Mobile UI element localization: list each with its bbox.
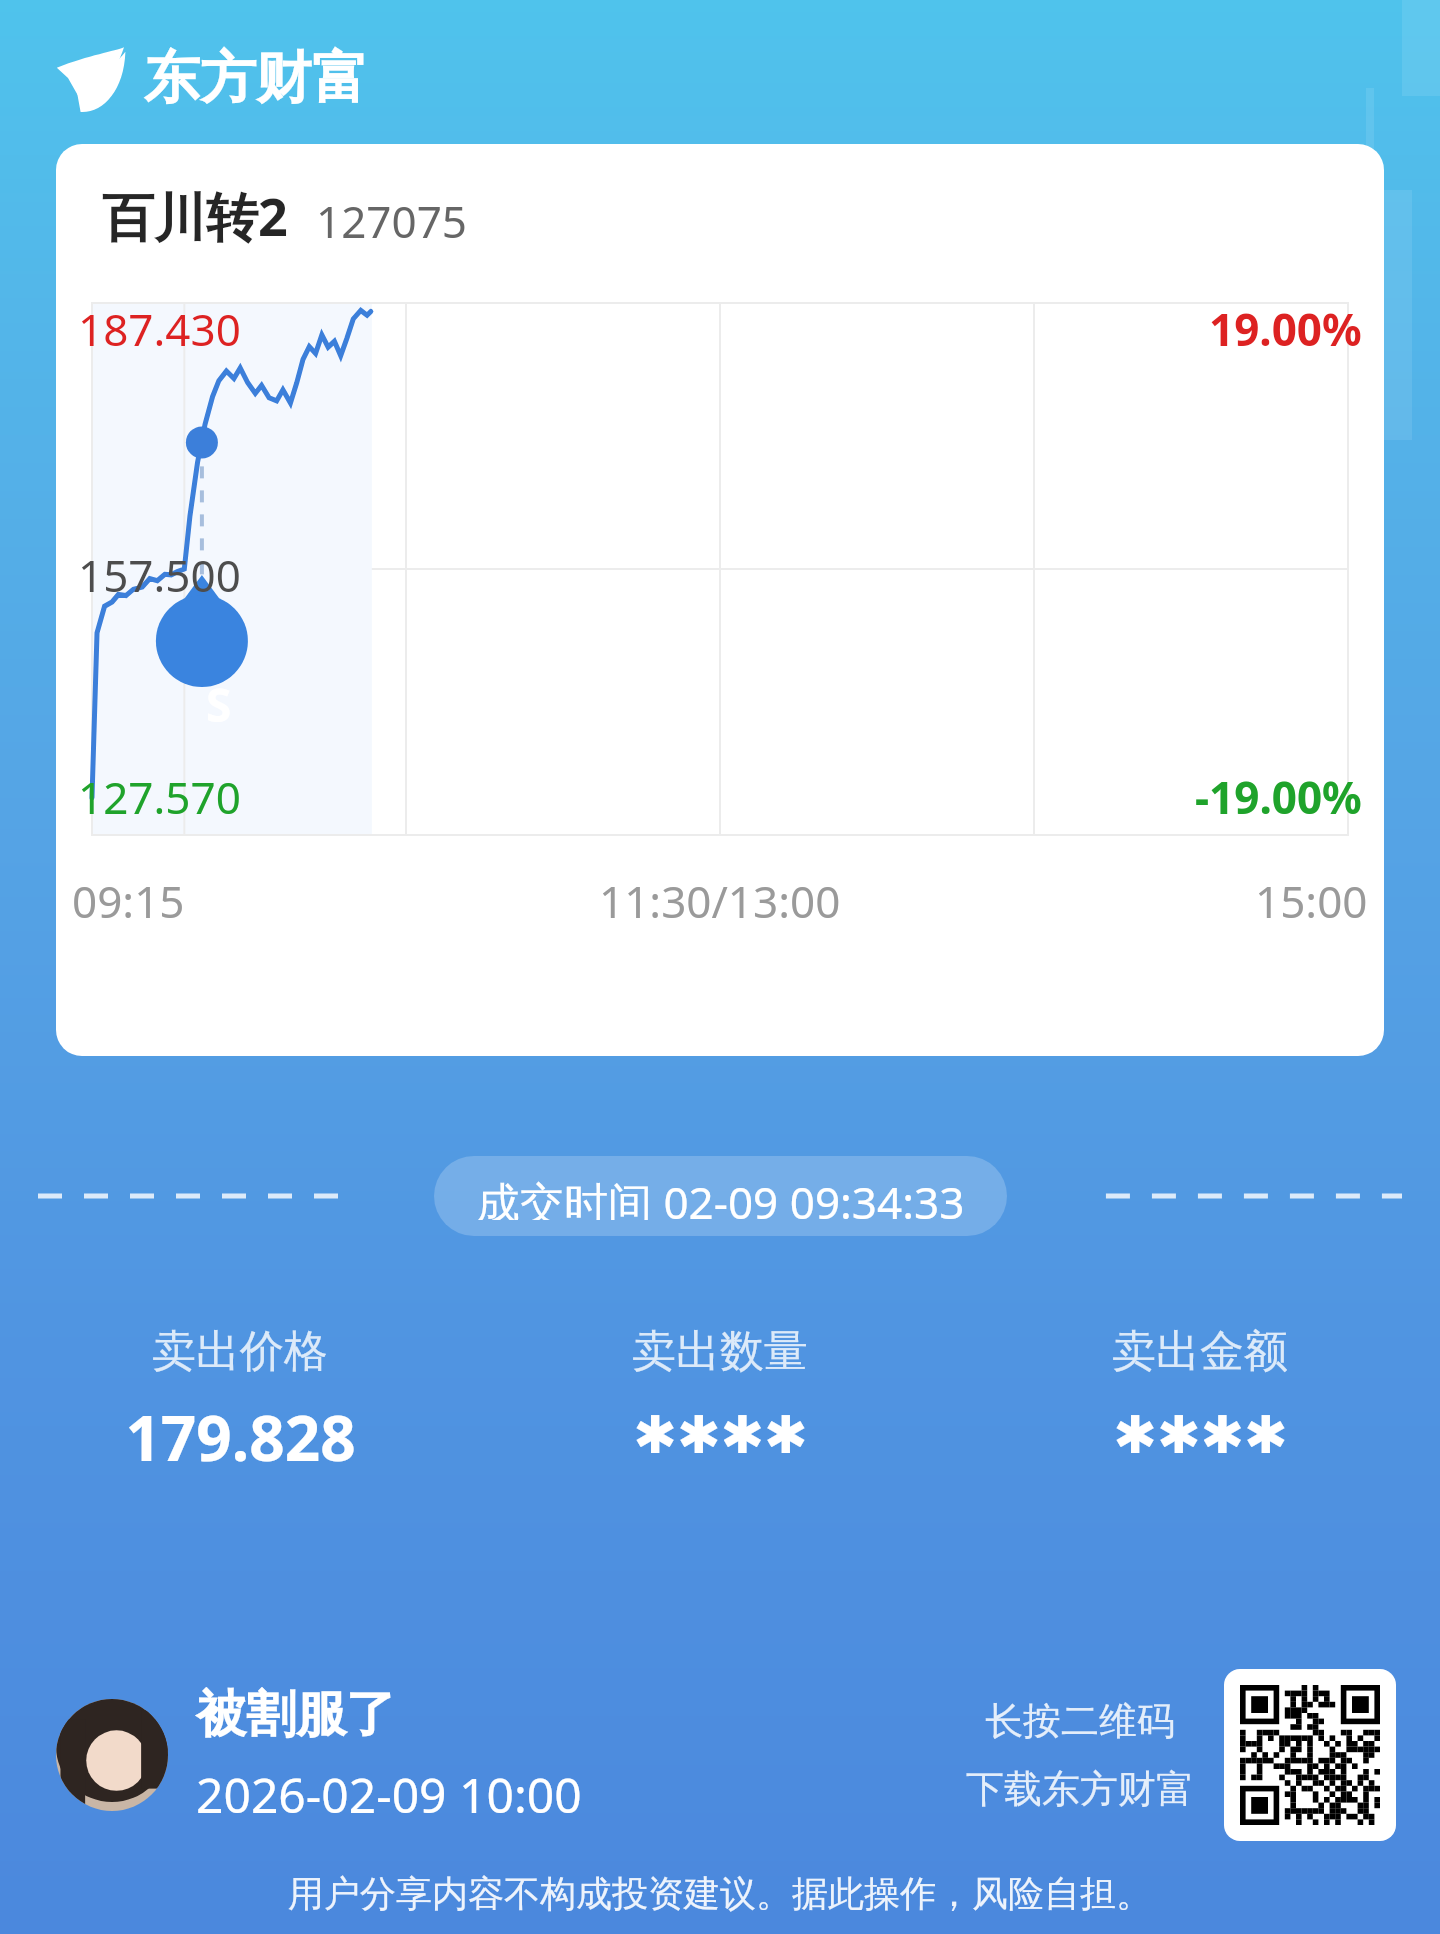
staticText: 11:30/13:00 — [599, 871, 841, 931]
staticText: ✱✱✱✱ — [1113, 1405, 1288, 1466]
button[interactable]: 成交时间 02-09 09:34:33 — [434, 1156, 1007, 1236]
staticText: 被割服了 — [196, 1683, 396, 1746]
staticText: 成交时间 02-09 09:34:33 — [476, 1172, 965, 1220]
staticText: 15:00 — [1255, 871, 1368, 931]
button[interactable]: 卖出价格 — [0, 1324, 480, 1479]
staticText: 127.570 — [78, 767, 241, 827]
staticText: ✱✱✱✱ — [633, 1405, 808, 1466]
staticText: 2026-02-09 10:00 — [196, 1762, 582, 1827]
staticText: 127075 — [316, 191, 468, 251]
staticText: 09:15 — [72, 871, 185, 931]
button[interactable]: 用户头像 — [56, 1699, 168, 1811]
staticText: 卖出数量 — [632, 1324, 808, 1379]
staticText: -19.00% — [1195, 767, 1362, 827]
staticText: 下载东方财富 — [966, 1765, 1194, 1813]
button[interactable]: 卖出数量 — [480, 1324, 960, 1466]
other: 东方财富 — [54, 46, 124, 110]
staticText: 157.500 — [78, 545, 241, 605]
button[interactable]: 卖出金额 — [960, 1324, 1440, 1466]
staticText: 179.828 — [125, 1395, 356, 1479]
button[interactable]: 二维码 — [1224, 1669, 1396, 1841]
staticText: 用户分享内容不构成投资建议。据此操作，风险自担。 — [288, 1871, 1152, 1916]
staticText: 187.430 — [78, 299, 241, 359]
button[interactable]: 百川转2 — [56, 144, 1384, 1056]
staticText: 卖出金额 — [1112, 1324, 1288, 1379]
staticText: 卖出价格 — [152, 1324, 328, 1379]
staticText: 长按二维码 — [985, 1697, 1175, 1745]
staticText: 19.00% — [1209, 299, 1362, 359]
staticText: 东方财富 — [144, 43, 368, 114]
staticText: S — [206, 673, 232, 736]
staticText: 百川转2 — [102, 180, 288, 251]
